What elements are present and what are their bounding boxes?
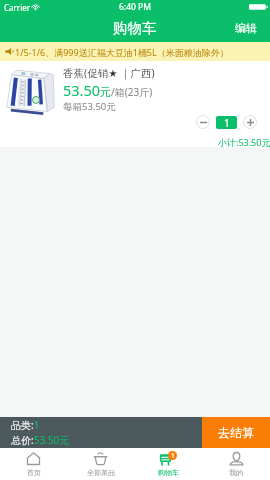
button[interactable]: Decrease quantity [196,115,210,129]
button[interactable]: Increase quantity [243,115,257,129]
staticText: 编辑 [235,21,257,35]
button[interactable]: 编辑 [225,17,270,39]
staticText: 品类:1 [11,418,40,432]
staticText: Carrier [4,2,31,13]
button[interactable]: 首页 [0,448,67,480]
staticText: 全部菜品 [87,468,115,477]
staticText: 1/5-1/6、满999送汇福大豆油1桶5L（米面粮油除外） [15,46,229,58]
staticText: 小计:53.50元 [218,136,270,148]
button[interactable]: 去结算 [202,417,270,448]
staticText: 香蕉(促销★ ｜广西) [63,66,155,80]
staticText: 购物车 [113,19,157,37]
staticText: 53.50元/箱(23斤) [63,80,153,100]
staticText: 1 [171,451,175,460]
staticText: 1 [224,116,230,129]
staticText: 6:40 PM [119,1,151,13]
staticText: 购物车 [158,468,179,477]
staticText: 我的 [229,468,243,477]
button[interactable]: 1 [134,448,202,480]
staticText: 总价:53.50元 [11,433,70,447]
staticText: 去结算 [218,425,254,440]
staticText: 每箱53.50元 [63,100,116,113]
button[interactable]: 全部菜品 [67,448,134,480]
button[interactable]: 我的 [202,448,270,480]
staticText: 首页 [27,468,41,477]
